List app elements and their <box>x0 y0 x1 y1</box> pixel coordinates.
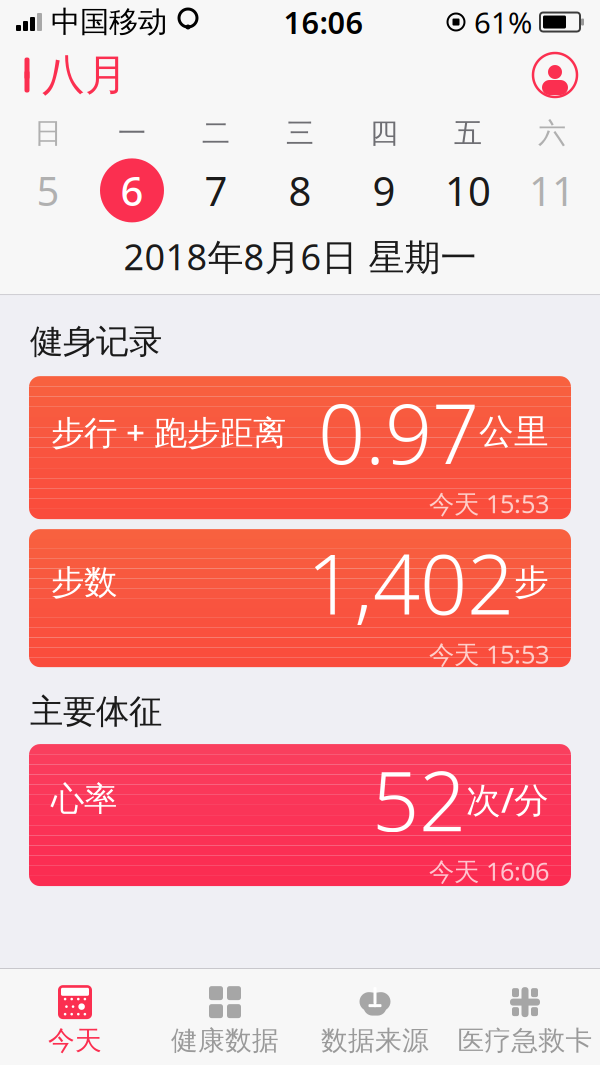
staticText: 健身记录 <box>30 321 162 362</box>
staticText: 日 <box>34 116 62 150</box>
staticText: 6 <box>120 164 143 217</box>
button[interactable]: 一 <box>90 116 174 222</box>
staticText: 0.97 <box>318 377 479 487</box>
button[interactable]: 五 <box>426 116 510 222</box>
staticText: 公里 <box>479 410 549 453</box>
staticText: 中国移动 <box>42 4 167 40</box>
staticText: 16:06 <box>283 2 363 42</box>
staticText: 11 <box>529 164 575 217</box>
staticText: 8 <box>288 164 311 217</box>
button[interactable]: 步数 <box>29 529 571 667</box>
staticText: 医疗急救卡 <box>457 1024 592 1057</box>
staticText: 今天 15:53 <box>429 637 549 671</box>
staticText: 三 <box>286 116 314 150</box>
staticText: 7 <box>204 164 227 217</box>
staticText: 今天 <box>48 1024 102 1057</box>
staticText: 心率 <box>51 779 117 820</box>
staticText: 52 <box>372 744 466 854</box>
staticText: 步行 + 跑步距离 <box>51 410 286 454</box>
button[interactable]: 八月 <box>0 43 128 107</box>
staticText: 9 <box>372 164 395 217</box>
button[interactable]: 数据来源 <box>300 977 450 1057</box>
staticText: 2018年8月6日 星期一 <box>123 232 476 280</box>
staticText: 步数 <box>51 562 117 603</box>
staticText: 步 <box>514 561 549 604</box>
button[interactable]: 三 <box>258 116 342 222</box>
button[interactable]: 日 <box>6 116 90 222</box>
button[interactable]: 个人资料 <box>532 48 600 102</box>
staticText: 5 <box>36 164 59 217</box>
button[interactable]: 六 <box>510 116 594 222</box>
staticText: 61% <box>466 2 540 41</box>
staticText: 四 <box>370 116 398 150</box>
staticText: 10 <box>445 164 491 217</box>
staticText: 一 <box>118 116 146 150</box>
staticText: 数据来源 <box>321 1024 429 1057</box>
button[interactable]: 二 <box>174 116 258 222</box>
button[interactable]: 今天 <box>0 977 150 1057</box>
staticText: 次/分 <box>466 776 549 822</box>
button[interactable]: 医疗急救卡 <box>450 977 600 1057</box>
staticText: 八月 <box>42 49 128 101</box>
staticText: 二 <box>202 116 230 150</box>
staticText: 五 <box>454 116 482 150</box>
staticText: 今天 15:53 <box>429 487 549 520</box>
button[interactable]: 四 <box>342 116 426 222</box>
staticText: 健康数据 <box>171 1024 279 1057</box>
button[interactable]: 健康数据 <box>150 977 300 1057</box>
button[interactable]: 心率 <box>29 744 571 886</box>
staticText: 1,402 <box>307 527 514 637</box>
button[interactable]: 步行 + 跑步距离 <box>29 376 571 519</box>
staticText: 主要体征 <box>30 691 162 732</box>
staticText: 六 <box>538 116 566 150</box>
staticText: 今天 16:06 <box>429 854 549 888</box>
